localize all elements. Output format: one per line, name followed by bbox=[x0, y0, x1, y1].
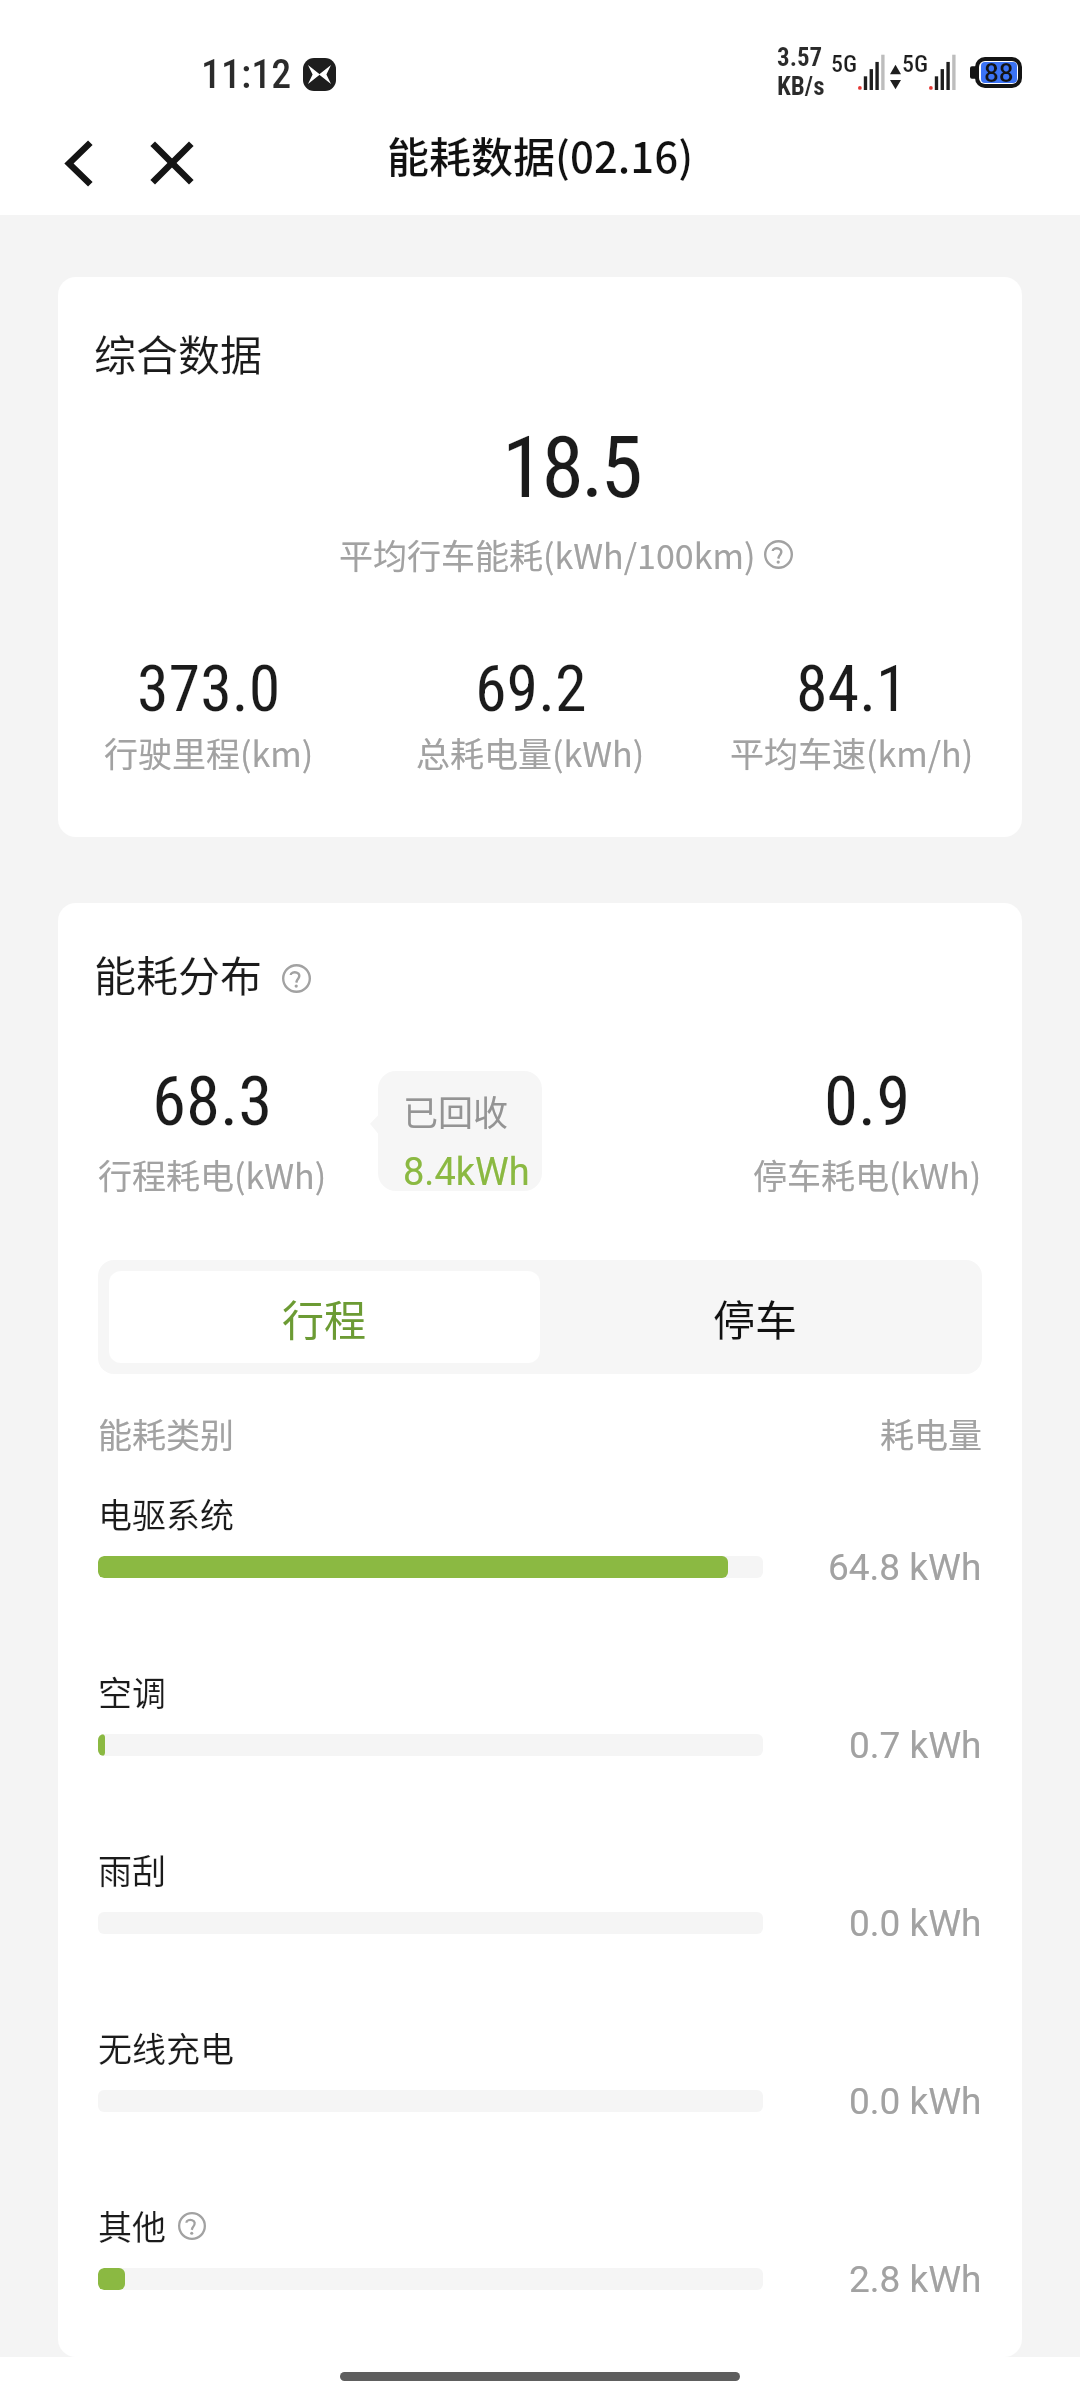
button[interactable]: 行程 bbox=[109, 1271, 540, 1363]
staticText: 已回收 bbox=[403, 1085, 509, 1136]
staticText: 能耗分布 bbox=[94, 943, 263, 1004]
staticText: 0.9 bbox=[824, 1061, 911, 1142]
staticText: 其他 bbox=[98, 2201, 166, 2250]
staticText: 总耗电量(kWh) bbox=[416, 728, 645, 777]
staticText: 行程耗电(kWh) bbox=[98, 1150, 327, 1199]
button[interactable]: Close bbox=[142, 133, 202, 193]
staticText: 停车 bbox=[713, 1287, 798, 1348]
staticText: 0.0 kWh bbox=[849, 2080, 982, 2123]
staticText: 18.5 bbox=[89, 417, 1022, 518]
button[interactable]: 关于平均行车能耗 bbox=[764, 540, 793, 569]
staticText: 空调 bbox=[98, 1667, 166, 1716]
staticText: 68.3 bbox=[152, 1061, 273, 1142]
staticText: 0.7 kWh bbox=[849, 1724, 982, 1767]
staticText: 0.0 kWh bbox=[849, 1902, 982, 1945]
staticText: 11:12 bbox=[201, 51, 292, 98]
staticText: 雨刮 bbox=[98, 1845, 166, 1894]
staticText: 能耗类别 bbox=[98, 1409, 234, 1458]
staticText: 2.8 kWh bbox=[849, 2258, 982, 2301]
staticText: 69.2 bbox=[475, 652, 587, 727]
button[interactable]: Back bbox=[48, 133, 108, 193]
staticText: 综合数据 bbox=[94, 322, 263, 383]
staticText: 5G bbox=[831, 50, 858, 78]
staticText: 无线充电 bbox=[98, 2023, 234, 2072]
staticText: 64.8 kWh bbox=[828, 1546, 982, 1589]
button[interactable]: 关于其他能耗 bbox=[178, 2212, 206, 2240]
staticText: 平均车速(km/h) bbox=[730, 728, 974, 777]
staticText: 3.57 bbox=[777, 43, 823, 72]
staticText: 373.0 bbox=[137, 652, 281, 727]
button[interactable]: 停车 bbox=[540, 1271, 971, 1363]
staticText: 5G bbox=[902, 50, 929, 78]
staticText: 行驶里程(km) bbox=[104, 728, 314, 777]
staticText: 停车耗电(kWh) bbox=[753, 1150, 982, 1199]
staticText: 84.1 bbox=[796, 652, 908, 727]
staticText: 耗电量 bbox=[880, 1409, 982, 1458]
staticText: 行程 bbox=[282, 1287, 367, 1348]
staticText: 平均行车能耗(kWh/100km) bbox=[339, 530, 756, 579]
staticText: 8.4kWh bbox=[403, 1150, 530, 1191]
staticText: KB/s bbox=[777, 72, 825, 101]
button[interactable]: 关于能耗分布 bbox=[282, 964, 311, 993]
staticText: 电驱系统 bbox=[98, 1489, 234, 1538]
staticText: 88 bbox=[984, 58, 1014, 88]
staticText: 能耗数据(02.16) bbox=[387, 124, 694, 185]
